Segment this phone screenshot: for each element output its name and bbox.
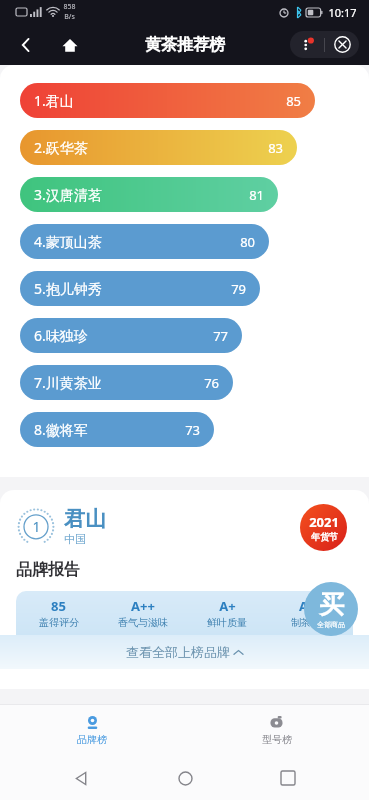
button[interactable]: Recents xyxy=(265,756,311,800)
staticText: 85 xyxy=(51,597,66,615)
staticText: 查看全部上榜品牌 xyxy=(126,644,230,660)
staticText: 品牌报告 xyxy=(16,560,80,580)
staticText: 盖得评分 xyxy=(39,616,79,629)
button[interactable]: 2.跃华茶 xyxy=(0,124,369,171)
button[interactable]: 6.味独珍 xyxy=(0,312,369,359)
staticText: 7.川黄茶业 xyxy=(34,373,102,392)
staticText: 全部商品 xyxy=(317,620,345,629)
staticText: 年货节 xyxy=(311,531,338,542)
staticText: 品牌榜 xyxy=(77,733,107,746)
staticText: A++ xyxy=(299,597,323,615)
button[interactable]: 查看全部上榜品牌 xyxy=(0,635,369,669)
button[interactable]: 买 xyxy=(304,582,358,636)
staticText: 83 xyxy=(268,139,283,157)
button[interactable]: 3.汉唐清茗 xyxy=(0,171,369,218)
button[interactable]: Back xyxy=(58,756,104,800)
button[interactable]: 1 xyxy=(16,506,369,546)
staticText: 85 xyxy=(286,92,301,110)
staticText: 5.抱儿钟秀 xyxy=(34,279,102,298)
staticText: 鲜叶质量 xyxy=(207,616,247,629)
staticText: A+ xyxy=(219,597,236,615)
staticText: 77 xyxy=(213,327,228,345)
staticText: B/s xyxy=(64,12,75,22)
button[interactable]: 85 xyxy=(16,591,353,635)
staticText: 3.汉唐清茗 xyxy=(34,185,102,204)
button[interactable]: Close xyxy=(325,31,359,58)
staticText: 1.君山 xyxy=(34,91,74,110)
staticText: A++ xyxy=(131,597,155,615)
staticText: 黄茶推荐榜 xyxy=(145,35,225,55)
staticText: 8.徽将军 xyxy=(34,420,88,439)
button[interactable]: 2021 xyxy=(300,504,347,551)
staticText: 79 xyxy=(231,280,246,298)
staticText: 10:17 xyxy=(328,5,357,20)
staticText: 香气与滋味 xyxy=(118,616,168,629)
staticText: 中国 xyxy=(64,532,86,546)
button[interactable]: 5.抱儿钟秀 xyxy=(0,265,369,312)
staticText: 制茶工艺 xyxy=(291,616,331,629)
staticText: 2021 xyxy=(309,513,339,531)
staticText: 买 xyxy=(319,589,344,620)
button[interactable]: 4.蒙顶山茶 xyxy=(0,218,369,265)
button[interactable]: 8.徽将军 xyxy=(0,406,369,453)
staticText: 81 xyxy=(249,186,264,204)
staticText: 73 xyxy=(185,421,200,439)
button[interactable]: 型号榜 xyxy=(184,704,369,756)
button[interactable]: More options xyxy=(290,31,324,58)
button[interactable]: 品牌榜 xyxy=(0,704,184,756)
staticText: 6.味独珍 xyxy=(34,326,88,345)
button[interactable]: Home xyxy=(52,27,88,63)
staticText: 858 xyxy=(63,2,76,12)
staticText: 76 xyxy=(204,374,219,392)
staticText: 2.跃华茶 xyxy=(34,138,88,157)
button[interactable]: 7.川黄茶业 xyxy=(0,359,369,406)
staticText: 80 xyxy=(240,233,255,251)
staticText: 4.蒙顶山茶 xyxy=(34,232,102,251)
button[interactable]: Back xyxy=(8,27,44,63)
staticText: 1 xyxy=(32,517,41,536)
button[interactable]: 1.君山 xyxy=(0,77,369,124)
staticText: 君山 xyxy=(64,506,106,532)
staticText: 型号榜 xyxy=(262,733,292,746)
button[interactable]: Home xyxy=(162,756,208,800)
